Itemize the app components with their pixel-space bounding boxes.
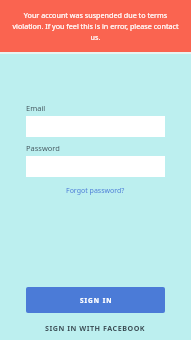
staticText: SIGN IN WITH FACEBOOK xyxy=(45,323,146,333)
staticText: SIGN IN xyxy=(80,296,113,305)
staticText: Email xyxy=(26,103,46,113)
button[interactable]: Forgot password? xyxy=(63,185,128,197)
button[interactable]: SIGN IN xyxy=(26,287,165,313)
button[interactable]: SIGN IN WITH FACEBOOK xyxy=(0,321,191,335)
staticText: Your account was suspended due to terms … xyxy=(10,10,181,42)
staticText: Password xyxy=(26,143,60,153)
